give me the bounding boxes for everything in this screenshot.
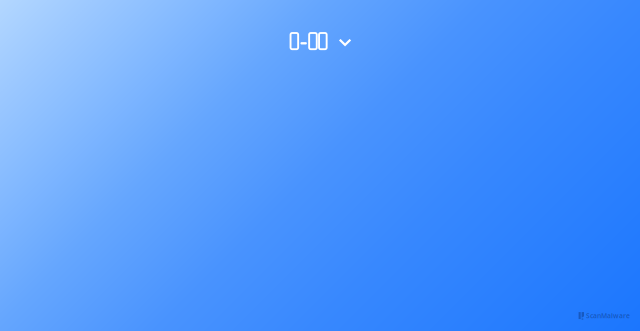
staticText: ScanMalware (586, 311, 630, 320)
button[interactable]: Switch profile (285, 27, 355, 55)
